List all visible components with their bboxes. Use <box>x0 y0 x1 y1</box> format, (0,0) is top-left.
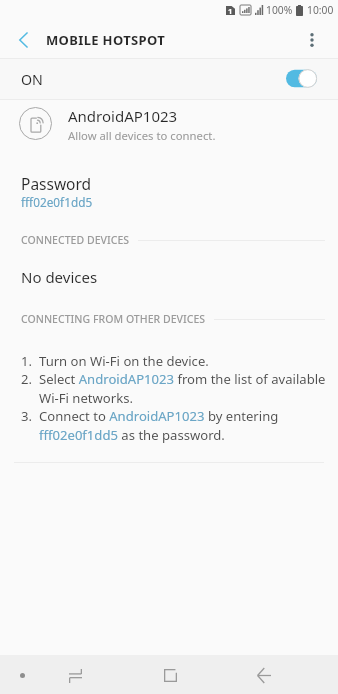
staticText: fff02e0f1dd5 <box>21 194 93 210</box>
staticText: ON <box>21 70 43 89</box>
button[interactable]: Show navigation buttons <box>8 655 37 694</box>
button[interactable]: More options <box>289 22 335 58</box>
staticText: 1 <box>228 6 233 15</box>
staticText: 100% <box>266 3 293 17</box>
staticText: CONNECTING FROM OTHER DEVICES <box>21 312 206 326</box>
button[interactable]: ON <box>0 59 338 99</box>
staticText: AndroidAP1023 <box>68 106 178 126</box>
staticText: 2. <box>21 370 39 388</box>
button[interactable]: Navigate up <box>0 22 46 58</box>
staticText: 10:00 <box>307 3 334 17</box>
staticText: 3. <box>21 407 39 425</box>
staticText: Password <box>21 173 92 194</box>
button[interactable]: AndroidAP1023 <box>0 100 338 148</box>
staticText: 1. <box>21 352 39 370</box>
staticText: No devices <box>21 267 98 287</box>
button[interactable]: Password <box>0 148 338 218</box>
button[interactable]: Back <box>232 655 296 694</box>
staticText: Allow all devices to connect. <box>68 128 216 143</box>
staticText: CONNECTED DEVICES <box>21 233 130 247</box>
staticText: Turn on Wi-Fi on the device. <box>39 352 209 370</box>
staticText: Select AndroidAP1023 from the list of av… <box>39 370 330 407</box>
button[interactable]: Home <box>138 655 202 694</box>
button[interactable]: Recent apps <box>43 655 107 694</box>
staticText: Connect to AndroidAP1023 by entering fff… <box>39 407 330 444</box>
staticText: MOBILE HOTSPOT <box>46 31 166 49</box>
